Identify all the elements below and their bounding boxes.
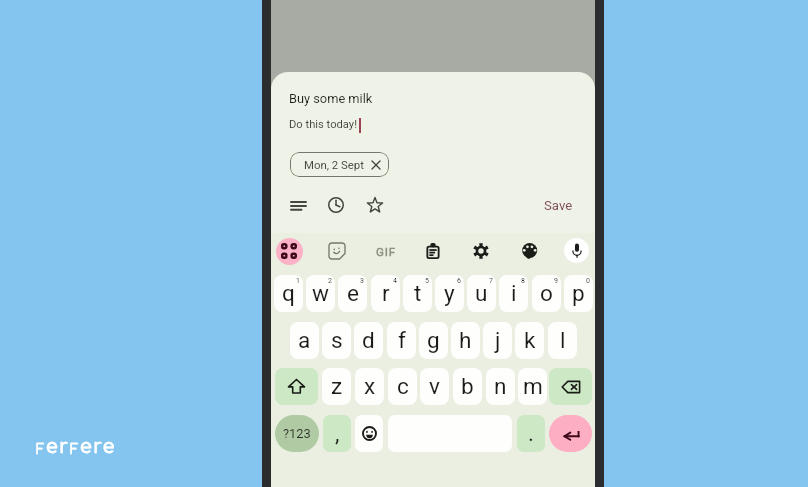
staticText: 4 — [393, 277, 397, 285]
staticText: e — [347, 280, 359, 306]
staticText: 7 — [489, 277, 493, 285]
button[interactable]: a — [290, 322, 319, 359]
button[interactable]: Save — [536, 192, 580, 218]
button[interactable]: Voice input — [564, 238, 589, 263]
button[interactable]: Stickers — [321, 235, 353, 267]
button[interactable]: z — [322, 368, 351, 405]
button[interactable]: d — [354, 322, 383, 359]
button[interactable]: l — [548, 322, 577, 359]
button[interactable]: GIF — [370, 235, 402, 267]
staticText: b — [461, 373, 474, 399]
button[interactable]: Mon, 2 Sept — [290, 152, 389, 177]
button[interactable]: r — [371, 275, 400, 312]
staticText: x — [364, 373, 376, 399]
staticText: g — [427, 327, 440, 353]
button[interactable]: x — [355, 368, 384, 405]
staticText: f — [398, 327, 406, 353]
staticText: w — [312, 280, 329, 306]
button[interactable]: s — [322, 322, 351, 359]
button[interactable]: b — [453, 368, 482, 405]
staticText: s — [331, 327, 343, 353]
staticText: h — [459, 327, 472, 353]
staticText: o — [540, 280, 553, 306]
staticText: Do this today! — [289, 118, 358, 131]
button[interactable]: k — [515, 322, 544, 359]
staticText: d — [362, 327, 375, 353]
staticText: r — [382, 280, 390, 306]
button[interactable]: m — [518, 368, 547, 405]
button[interactable]: t — [403, 275, 432, 312]
button[interactable]: Themes — [514, 235, 546, 267]
button[interactable]: ?123 — [275, 415, 319, 452]
staticText: y — [444, 280, 455, 306]
staticText: . — [528, 420, 534, 446]
staticText: n — [494, 373, 507, 399]
staticText: m — [523, 373, 543, 399]
staticText: F — [70, 442, 80, 457]
staticText: t — [414, 280, 422, 306]
staticText: j — [495, 327, 501, 353]
button[interactable]: Clipboard — [417, 235, 449, 267]
staticText: , — [335, 420, 340, 446]
button[interactable]: Set time — [320, 189, 352, 221]
button[interactable]: w — [306, 275, 335, 312]
staticText: ?123 — [283, 426, 311, 441]
staticText: Mon, 2 Sept — [304, 158, 364, 171]
button[interactable]: v — [420, 368, 449, 405]
button[interactable]: Star — [359, 189, 391, 221]
button[interactable]: u — [467, 275, 496, 312]
button[interactable]: f — [387, 322, 416, 359]
staticText: 6 — [457, 277, 461, 285]
staticText: GIF — [376, 245, 397, 259]
button[interactable]: Backspace — [549, 368, 592, 405]
staticText: 0 — [586, 277, 590, 285]
button[interactable]: Settings — [465, 235, 497, 267]
button[interactable]: Emoji — [355, 415, 383, 452]
button[interactable]: Format list — [282, 189, 314, 221]
staticText: Buy some milk — [289, 91, 373, 106]
staticText: i — [511, 280, 517, 306]
staticText: 2 — [328, 277, 332, 285]
button[interactable]: q — [274, 275, 303, 312]
button[interactable]: h — [451, 322, 480, 359]
button[interactable]: y — [435, 275, 464, 312]
staticText: z — [331, 373, 343, 399]
button[interactable]: j — [483, 322, 512, 359]
button[interactable]: Apps — [273, 235, 305, 267]
button[interactable]: p — [564, 275, 593, 312]
staticText: q — [282, 280, 295, 306]
staticText: 1 — [296, 277, 300, 285]
button[interactable]: Shift — [275, 368, 318, 405]
staticText: k — [524, 327, 536, 353]
button[interactable]: o — [532, 275, 561, 312]
staticText: 3 — [360, 277, 364, 285]
button[interactable]: n — [486, 368, 515, 405]
button[interactable]: c — [388, 368, 417, 405]
staticText: l — [560, 327, 566, 353]
staticText: F — [36, 442, 46, 457]
button[interactable]: , — [323, 415, 351, 452]
staticText: Save — [544, 198, 573, 213]
staticText: u — [475, 280, 488, 306]
button[interactable]: g — [419, 322, 448, 359]
staticText: er — [46, 436, 70, 457]
staticText: 9 — [554, 277, 558, 285]
button[interactable]: . — [517, 415, 545, 452]
staticText: c — [397, 373, 409, 399]
staticText: 8 — [521, 277, 525, 285]
button[interactable]: e — [338, 275, 367, 312]
staticText: 5 — [425, 277, 429, 285]
button[interactable]: i — [499, 275, 528, 312]
staticText: ere — [80, 436, 117, 457]
staticText: a — [298, 327, 311, 353]
staticText: p — [572, 280, 585, 306]
button[interactable]: Enter — [549, 415, 592, 452]
staticText: v — [429, 373, 440, 399]
